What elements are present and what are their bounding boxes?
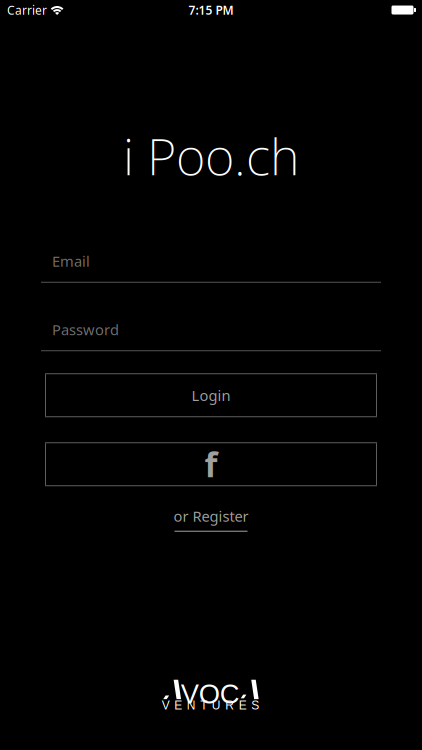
staticText: U (212, 699, 221, 712)
staticText: R (225, 699, 234, 712)
staticText: E (174, 699, 182, 712)
staticText: VOC (181, 679, 240, 709)
staticText: f (204, 442, 217, 486)
button[interactable]: Login (45, 373, 377, 417)
staticText: T (200, 699, 207, 712)
staticText: Login (191, 385, 230, 405)
staticText: i Poo.ch (123, 122, 299, 189)
staticText: or Register (173, 506, 248, 526)
staticText: Carrier (7, 2, 47, 18)
staticText: S (251, 699, 259, 712)
staticText: E (239, 699, 247, 712)
staticText: Email (52, 251, 90, 271)
staticText: 7:15 PM (188, 2, 233, 18)
staticText: N (187, 699, 196, 712)
staticText: V (162, 699, 170, 712)
staticText: Password (52, 320, 119, 339)
button[interactable]: Sign in with Facebook (45, 442, 377, 486)
button[interactable]: or Register (173, 506, 248, 532)
